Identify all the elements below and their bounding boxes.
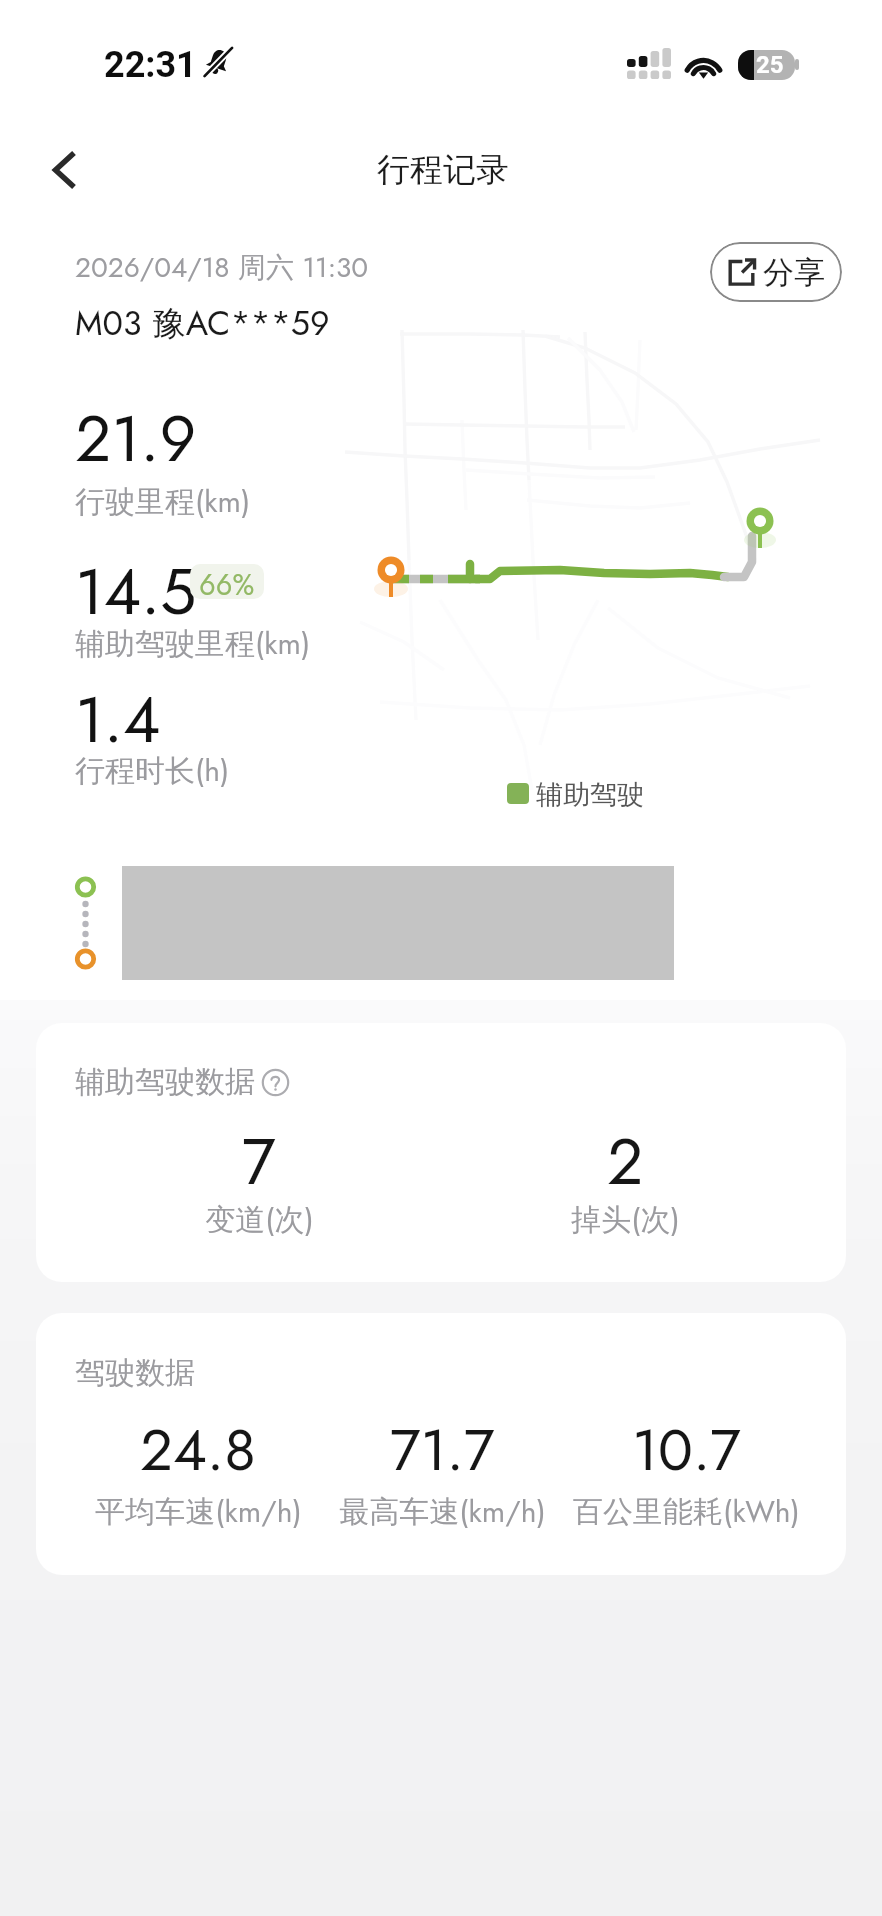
- staticText: 10.7: [632, 1408, 741, 1492]
- staticText: 66%: [199, 564, 255, 599]
- staticText: M03 豫AC***59: [75, 299, 330, 348]
- staticText: 1.4: [75, 674, 161, 766]
- staticText: 辅助驾驶数据: [75, 1063, 255, 1101]
- staticText: 25: [756, 51, 784, 79]
- staticText: 辅助驾驶: [536, 778, 644, 812]
- staticText: 百公里能耗(kWh): [573, 1490, 800, 1533]
- staticText: 变道(次): [205, 1198, 314, 1241]
- staticText: 行程时长(h): [75, 749, 230, 792]
- staticText: 分享: [763, 253, 825, 292]
- staticText: 行驶里程(km): [75, 480, 251, 523]
- staticText: 平均车速(km/h): [95, 1490, 302, 1533]
- staticText: 14.5: [75, 546, 197, 638]
- button[interactable]: Back: [18, 120, 110, 220]
- staticText: 71.7: [390, 1408, 495, 1492]
- button[interactable]: 分享: [710, 242, 842, 302]
- staticText: 2: [607, 1116, 644, 1208]
- staticText: 辅助驾驶里程(km): [75, 622, 311, 665]
- staticText: 22:31: [104, 44, 197, 86]
- button[interactable]: 辅助驾驶数据: [36, 1023, 846, 1282]
- staticText: 驾驶数据: [75, 1354, 195, 1392]
- staticText: 2026/04/18 周六 11:30: [75, 247, 369, 287]
- staticText: 最高车速(km/h): [339, 1490, 546, 1533]
- staticText: 21.9: [75, 393, 197, 485]
- staticText: 24.8: [140, 1408, 256, 1492]
- staticText: 7: [242, 1116, 276, 1208]
- button[interactable]: 驾驶数据: [36, 1313, 846, 1575]
- staticText: 掉头(次): [571, 1198, 680, 1241]
- staticText: 行程记录: [377, 149, 509, 191]
